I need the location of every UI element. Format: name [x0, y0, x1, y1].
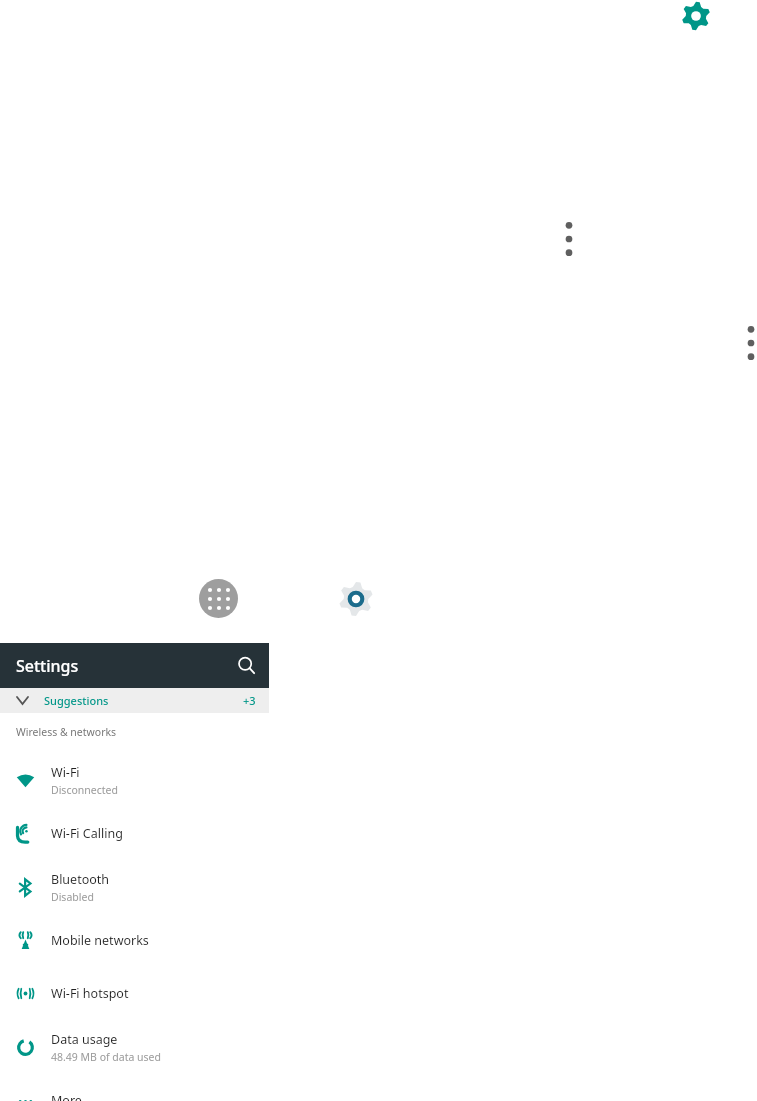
button[interactable]: Wi-Fi hotspot: [0, 967, 269, 1020]
staticText: Settings: [16, 655, 224, 677]
staticText: Mobile networks: [51, 932, 149, 949]
button[interactable]: Wi-Fi: [0, 753, 269, 807]
button[interactable]: Apps: [199, 579, 238, 618]
button[interactable]: Data usage: [0, 1020, 269, 1074]
staticText: Data usage: [51, 1031, 118, 1048]
staticText: Disabled: [51, 890, 94, 904]
button[interactable]: Wi-Fi Calling: [0, 807, 269, 860]
staticText: Disconnected: [51, 783, 118, 797]
button[interactable]: Bluetooth: [0, 860, 269, 914]
staticText: Wi-Fi Calling: [51, 825, 123, 842]
button[interactable]: Suggestions: [0, 688, 269, 713]
button[interactable]: More options: [552, 216, 586, 262]
staticText: +3: [243, 693, 256, 708]
button[interactable]: More: [0, 1074, 269, 1101]
button[interactable]: Search: [224, 643, 269, 688]
staticText: Wi-Fi hotspot: [51, 985, 129, 1002]
staticText: More: [51, 1092, 82, 1101]
staticText: Bluetooth: [51, 871, 110, 888]
staticText: 48.49 MB of data used: [51, 1050, 161, 1064]
staticText: Wireless & networks: [16, 725, 117, 739]
staticText: Suggestions: [44, 693, 243, 708]
button[interactable]: Mobile networks: [0, 914, 269, 967]
staticText: Wi-Fi: [51, 764, 80, 781]
button[interactable]: Settings: [679, 0, 713, 32]
button[interactable]: More options: [736, 320, 757, 366]
button[interactable]: Settings app: [336, 579, 376, 619]
